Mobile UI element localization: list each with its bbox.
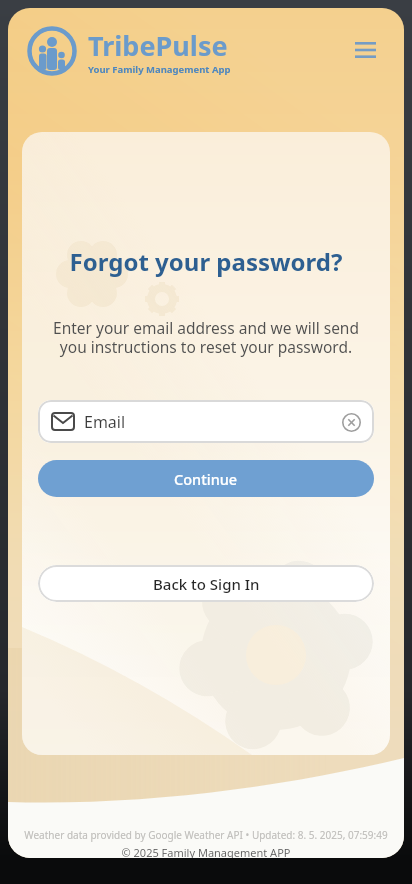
staticText: Your Family Management App (88, 63, 231, 76)
staticText: Weather data provided by Google Weather … (8, 828, 404, 842)
staticText: Back to Sign In (153, 574, 260, 594)
staticText: Enter your email address and we will sen… (22, 317, 390, 357)
staticText: © 2025 Family Management APP (8, 845, 404, 858)
staticText: Continue (174, 469, 238, 489)
button[interactable]: Back to Sign In (38, 565, 374, 602)
staticText: TribePulse (88, 27, 228, 64)
button[interactable] (336, 407, 366, 437)
staticText: Email (84, 411, 126, 433)
staticText: Forgot your password? (22, 245, 390, 278)
button[interactable] (351, 36, 379, 64)
button[interactable]: Continue (38, 460, 374, 497)
button[interactable]: Email (38, 400, 374, 443)
